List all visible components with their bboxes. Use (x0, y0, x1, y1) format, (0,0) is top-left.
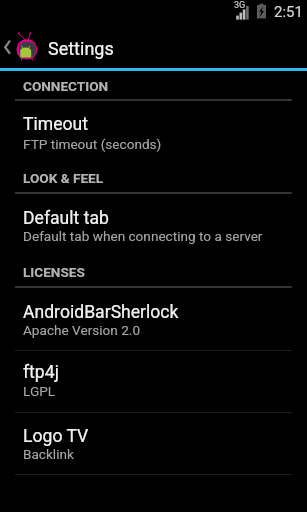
staticText: Default tab when connecting to a server (23, 228, 263, 244)
button[interactable]: AndroidBarSherlock (0, 291, 307, 350)
staticText: LGPL (23, 383, 56, 399)
staticText: 3G (234, 0, 246, 11)
staticText: Backlink (23, 446, 74, 462)
staticText: CONNECTION (23, 78, 109, 94)
button[interactable]: Logo TV (0, 413, 307, 474)
staticText: FTP timeout (seconds) (23, 136, 162, 152)
staticText: ftp4j (23, 362, 59, 383)
staticText: AndroidBarSherlock (23, 302, 179, 323)
staticText: Apache Version 2.0 (23, 322, 141, 338)
button[interactable]: Default tab (0, 197, 307, 257)
staticText: LICENSES (23, 264, 85, 280)
staticText: LOOK & FEEL (23, 170, 104, 186)
staticText: Settings (48, 38, 114, 59)
staticText: Logo TV (23, 426, 89, 447)
staticText: Default tab (23, 208, 109, 229)
staticText: 2:51 (274, 3, 303, 21)
button[interactable]: ftp4j (0, 351, 307, 412)
button[interactable]: Navigate up (0, 24, 112, 68)
staticText: Timeout (23, 114, 89, 135)
other: Battery charging (256, 3, 268, 21)
button[interactable]: Timeout (0, 104, 307, 164)
other: Mobile signal 3G (234, 4, 250, 20)
